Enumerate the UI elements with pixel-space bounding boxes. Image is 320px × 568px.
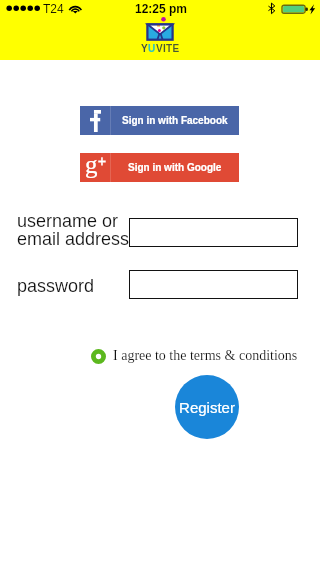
button[interactable]: g	[80, 153, 239, 182]
staticText: U	[148, 43, 156, 54]
button[interactable]: password	[129, 270, 298, 299]
staticText: VITE	[156, 43, 180, 54]
staticText: password	[17, 276, 95, 296]
staticText: Sign in with Facebook	[122, 115, 228, 126]
staticText: g	[85, 151, 98, 179]
staticText: 12:25 pm	[135, 2, 188, 15]
staticText: Sign in with Google	[128, 162, 222, 173]
button[interactable]: username or email address	[129, 218, 298, 247]
staticText: I agree to the terms & conditions	[113, 348, 298, 364]
button[interactable]: Sign in with Facebook	[80, 106, 239, 135]
staticText: T24	[43, 2, 64, 15]
staticText: Y	[141, 43, 148, 54]
button[interactable]: I agree to the terms & conditions	[91, 347, 298, 365]
staticText: username or email address	[17, 211, 130, 248]
staticText: +	[98, 154, 106, 170]
button[interactable]: Register	[175, 375, 239, 439]
staticText: Register	[179, 399, 235, 416]
